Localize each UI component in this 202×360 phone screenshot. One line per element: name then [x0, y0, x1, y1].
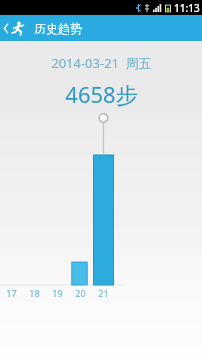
staticText: 历史趋势: [34, 21, 82, 36]
staticText: 20: [75, 287, 86, 299]
staticText: 4658步: [65, 79, 138, 109]
staticText: 11:13: [174, 1, 200, 15]
button[interactable]: 20: [71, 286, 89, 299]
button[interactable]: Back: [0, 15, 29, 41]
button[interactable]: 21: [94, 286, 112, 299]
button[interactable]: 18: [25, 286, 43, 299]
button[interactable]: 17: [2, 286, 20, 299]
staticText: 19: [52, 287, 63, 299]
staticText: 18: [29, 287, 40, 299]
staticText: 2014-03-21 周五: [51, 54, 152, 72]
staticText: 17: [6, 287, 17, 299]
button[interactable]: 19: [48, 286, 66, 299]
staticText: 21: [98, 287, 109, 299]
